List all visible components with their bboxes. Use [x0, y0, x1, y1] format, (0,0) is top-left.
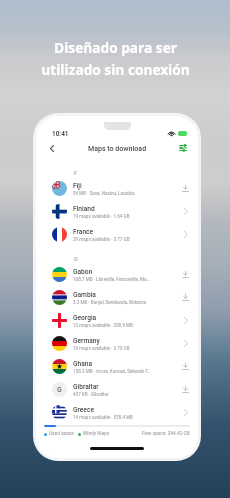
button[interactable]: Gambia — [36, 286, 198, 309]
staticText: Free space: 244.42 GB — [142, 431, 190, 437]
staticText: Fiji — [73, 182, 82, 190]
staticText: 10:41 — [52, 130, 69, 138]
staticText: Gabon — [73, 268, 93, 276]
staticText: Windy Maps — [83, 431, 110, 437]
staticText: 108.7 MB · Libreville, Franceville, Mo..… — [73, 277, 151, 282]
staticText: Georgia — [73, 314, 97, 322]
staticText: 16 maps available · 3.73 GB — [73, 346, 130, 351]
staticText: Gambia — [73, 291, 96, 299]
staticText: G — [57, 386, 62, 394]
button[interactable]: Germany — [36, 332, 198, 355]
staticText: Finland — [73, 205, 95, 213]
button[interactable]: Fiji — [36, 177, 198, 200]
button[interactable]: G — [36, 378, 198, 401]
staticText: Ghana — [73, 360, 93, 368]
button[interactable]: Finland — [36, 200, 198, 223]
button[interactable]: Gabon — [36, 263, 198, 286]
staticText: 29 maps available · 3.77 GB — [73, 237, 130, 242]
staticText: Used space — [49, 431, 74, 437]
button[interactable]: Greece — [36, 401, 198, 424]
button[interactable]: Back — [44, 140, 60, 156]
staticText: F — [74, 170, 78, 176]
staticText: 14 maps available · 578.4 MB — [73, 415, 133, 420]
staticText: 3.3 MB · Banjul, Serekunda, Brikama — [73, 300, 147, 305]
staticText: France — [73, 228, 94, 236]
button[interactable]: Georgia — [36, 309, 198, 332]
staticText: 13 maps available · 328.9 MB — [73, 323, 133, 328]
staticText: utilizado sin conexión — [41, 60, 190, 79]
staticText: 54 MB · Suva, Nasinu, Lautoka — [73, 191, 135, 196]
button[interactable]: Filter — [176, 141, 190, 155]
staticText: 437 KB · Gibraltar — [73, 392, 109, 397]
staticText: 19 maps available · 1.64 GB — [73, 214, 130, 219]
button[interactable]: Ghana — [36, 355, 198, 378]
staticText: Maps to download — [88, 144, 147, 152]
staticText: G — [74, 256, 78, 262]
staticText: Greece — [73, 406, 94, 414]
staticText: 158.3 MB · Accra, Kumasi, Sekondi-T... — [73, 369, 151, 374]
staticText: Germany — [73, 337, 100, 345]
staticText: Diseñado para ser — [54, 38, 177, 57]
staticText: Gibraltar — [73, 383, 99, 391]
button[interactable]: France — [36, 223, 198, 246]
